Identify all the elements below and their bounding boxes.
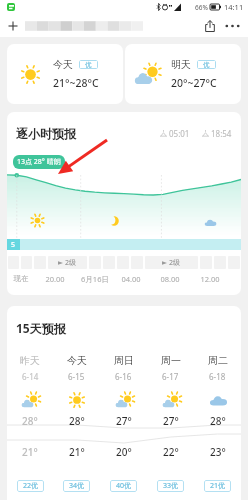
staticText: 22优 [23,481,39,491]
staticText: 21优 [210,481,226,491]
staticText: 27° [163,414,179,428]
staticText: 21° [22,445,38,459]
button[interactable]: 周二 [194,348,241,500]
staticText: 12.00 [188,274,232,284]
staticText: 21° [69,445,85,459]
staticText: 18:54 [211,128,232,139]
staticText: 34优 [69,481,85,491]
staticText: 5 [11,240,16,250]
staticText: 6-17 [162,371,179,382]
button[interactable]: 明天 [125,44,241,104]
staticText: 33优 [163,481,179,491]
button[interactable]: 2级 [145,256,198,269]
staticText: 22° [163,445,179,459]
staticText: 周二 [208,354,228,367]
staticText: 15天预报 [16,320,66,336]
staticText: 40优 [116,481,132,491]
staticText: 20° [116,445,132,459]
staticText: 6-15 [68,371,85,382]
staticText: 2级 [65,258,77,268]
staticText: 13点 28° 晴朗 [17,157,61,167]
staticText: 昨天 [20,354,40,367]
staticText: 28° [22,414,38,428]
staticText: 现在 [7,274,43,283]
staticText: 23° [210,445,226,459]
staticText: 20.00 [33,274,77,284]
staticText: 6-16 [115,371,132,382]
button[interactable]: 昨天 [7,348,53,500]
staticText: 逐小时预报 [16,126,76,141]
button[interactable]: 周一 [147,348,194,500]
button[interactable]: 今天 [53,348,100,500]
button[interactable]: 2级 [48,256,87,269]
staticText: 6-18 [209,371,226,382]
staticText: 21°~28°C [53,76,99,90]
staticText: 08.00 [148,274,192,284]
staticText: 14:11 [224,2,244,12]
button[interactable]: 今天 [7,44,123,104]
staticText: 20°~27°C [171,76,217,90]
staticText: 优 [203,61,210,69]
staticText: 27° [116,414,132,428]
staticText: 66% [195,3,208,12]
staticText: 周日 [114,354,134,367]
staticText: 2级 [169,258,181,268]
staticText: 明天 [171,58,191,71]
staticText: 28° [210,414,226,428]
staticText: 6月16日 [73,274,117,284]
staticText: 今天 [67,354,87,367]
staticText: 05:01 [169,128,190,139]
staticText: 周一 [161,354,181,367]
button[interactable]: Share [200,16,220,36]
button[interactable]: Add city [4,17,22,35]
staticText: 优 [85,61,92,69]
button[interactable]: 周日 [100,348,147,500]
staticText: 6-14 [22,371,39,382]
staticText: 28° [69,414,85,428]
staticText: 04.00 [109,274,153,284]
staticText: 今天 [53,58,73,71]
button[interactable]: More options [222,16,242,36]
